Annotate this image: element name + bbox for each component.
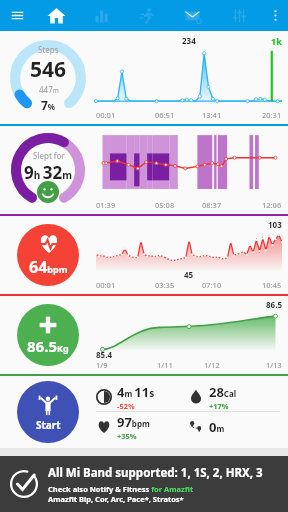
button[interactable]: Settings [216,0,262,31]
staticText: 64bpm [29,256,68,278]
button[interactable]: 64bpm [17,224,79,286]
button[interactable]: 86.5Kg [17,304,79,366]
staticText: -52% [117,401,135,411]
button[interactable]: Notifications [170,0,216,31]
button[interactable]: Start [17,381,79,443]
button[interactable]: 0m [188,418,280,436]
staticText: 234 [182,35,196,46]
button[interactable]: All Mi Band supported: 1, 1S, 2, HRX, 3 [0,456,288,512]
button[interactable]: Statistics [79,0,124,31]
staticText: 86.5 [266,299,282,309]
staticText: All Mi Band supported: 1, 1S, 2, HRX, 3 [48,465,263,481]
staticText: 9h 32m [24,161,73,184]
staticText: 1/13 [266,360,282,370]
staticText: 03:35 [155,280,175,290]
staticText: 00:01 [96,280,116,290]
staticText: 45 [184,269,194,280]
staticText: 447m [39,84,59,95]
staticText: 97bpm [117,413,150,431]
staticText: 103 [268,219,282,229]
button[interactable]: Menu [0,0,34,31]
staticText: +35% [117,431,137,441]
staticText: 01:39 [96,200,116,210]
staticText: 85.4 [96,349,112,360]
staticText: 4m 11s [117,383,155,401]
button[interactable]: 28Cal [188,383,280,411]
staticText: 1/9 [96,360,108,370]
button[interactable]: Slept for [0,126,288,216]
staticText: 08:37 [202,200,222,210]
button[interactable]: Activity [124,0,170,31]
staticText: 12:06 [262,200,282,210]
staticText: 06:51 [155,110,175,120]
button[interactable]: Home [34,0,79,31]
staticText: 1k [271,35,282,47]
button[interactable]: 86.5Kg [0,296,288,376]
staticText: 00:01 [96,110,116,120]
staticText: 0m [209,418,225,436]
staticText: Steps [38,44,59,55]
staticText: 07:10 [202,280,222,290]
staticText: Amazfit Bip, Cor, Arc, Pace*, Stratos* [48,494,184,504]
staticText: 28Cal [209,383,237,401]
staticText: 10:45 [262,280,282,290]
button[interactable]: 97bpm [96,413,188,441]
button[interactable]: Steps [0,31,288,126]
staticText: Start [36,418,61,432]
staticText: Slept for [33,150,65,161]
staticText: 546 [30,55,67,84]
button[interactable]: 64bpm [0,216,288,296]
staticText: 05:08 [155,200,175,210]
staticText: +17% [209,401,229,411]
button[interactable]: 4m 11s [96,383,188,411]
staticText: 13:41 [202,110,222,120]
staticText: 20:31 [262,110,282,120]
staticText: 1/12 [204,360,220,370]
staticText: Check also Notify & Fitness for Amazfit [48,484,194,494]
button[interactable]: More options [262,0,288,31]
staticText: 7% [41,97,56,113]
staticText: 1/11 [157,360,173,370]
staticText: 86.5Kg [27,336,69,356]
